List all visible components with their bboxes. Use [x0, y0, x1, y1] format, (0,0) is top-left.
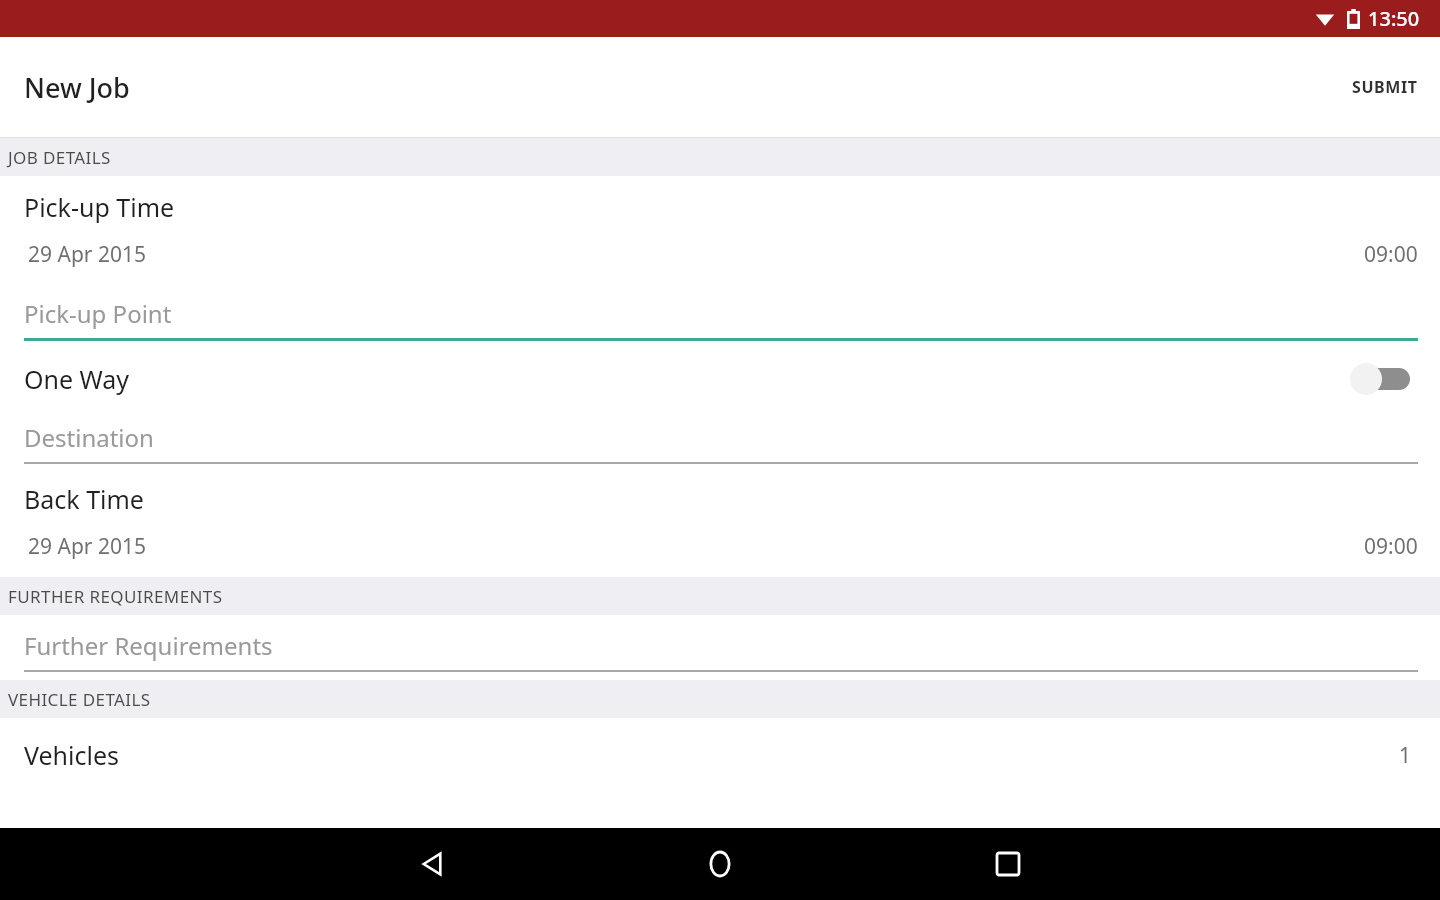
staticText: Back Time	[24, 482, 144, 516]
staticText: SUBMIT	[1352, 76, 1418, 98]
staticText: 09:00	[1364, 240, 1418, 269]
button[interactable]: SUBMIT	[1330, 56, 1440, 118]
button[interactable]: Further Requirements	[0, 615, 1440, 680]
button[interactable]: Pick-up Point	[0, 285, 1440, 347]
staticText: FURTHER REQUIREMENTS	[8, 585, 223, 608]
staticText: 29 Apr 2015	[28, 240, 146, 269]
staticText: Further Requirements	[24, 629, 273, 662]
button[interactable]: Vehicles	[0, 718, 1440, 790]
staticText: One Way	[24, 362, 130, 396]
staticText: 29 Apr 2015	[28, 532, 146, 561]
button[interactable]: 29 Apr 2015	[0, 226, 1440, 285]
staticText: JOB DETAILS	[8, 146, 111, 169]
staticText: Destination	[24, 421, 154, 454]
staticText: Vehicles	[24, 738, 120, 772]
button[interactable]: Home	[688, 832, 752, 896]
staticText: 13:50	[1368, 5, 1420, 32]
button[interactable]: One Way	[0, 347, 1440, 409]
staticText: New Job	[24, 69, 130, 106]
button[interactable]: Pick-up Time	[0, 176, 1440, 226]
button[interactable]: Back	[400, 832, 464, 896]
staticText: VEHICLE DETAILS	[8, 688, 151, 711]
button[interactable]: Back Time	[0, 470, 1440, 518]
staticText: Pick-up Time	[24, 190, 175, 224]
button[interactable]: Destination	[0, 409, 1440, 470]
staticText: 09:00	[1364, 532, 1418, 561]
button[interactable]: Recent apps	[976, 832, 1040, 896]
staticText: 1	[1399, 741, 1412, 770]
staticText: Pick-up Point	[24, 297, 172, 330]
button[interactable]: 29 Apr 2015	[0, 518, 1440, 577]
